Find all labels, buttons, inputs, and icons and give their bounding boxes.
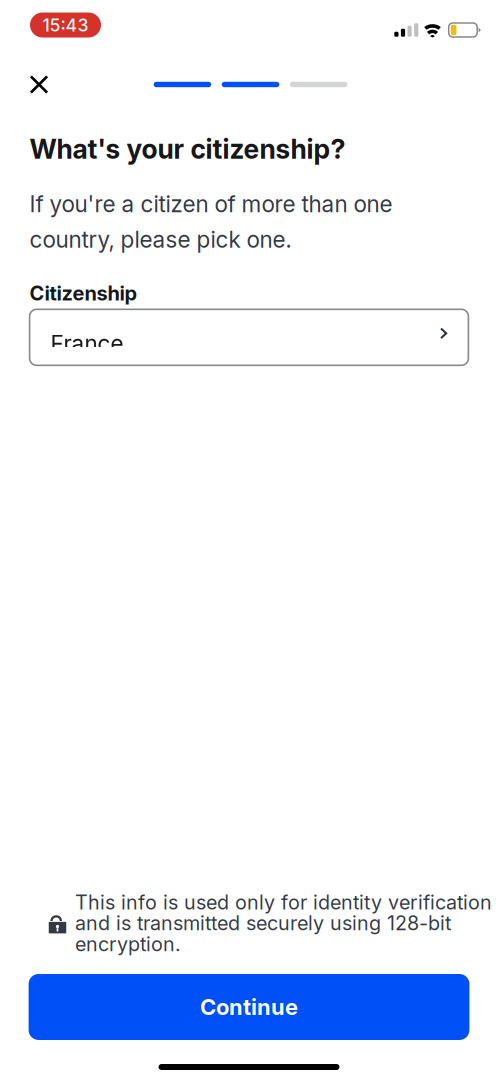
staticText: If you're a citizen of more than one cou… (30, 190, 393, 253)
staticText: France (51, 330, 124, 357)
staticText: 15:43 (42, 14, 88, 36)
staticText: This info is used only for identity veri… (75, 890, 492, 956)
staticText: Citizenship (30, 281, 138, 305)
staticText: What's your citizenship? (30, 133, 346, 165)
button[interactable]: France (30, 309, 468, 365)
staticText: Continue (200, 994, 298, 1020)
button[interactable]: Close (20, 66, 57, 103)
button[interactable]: Continue (29, 974, 469, 1040)
